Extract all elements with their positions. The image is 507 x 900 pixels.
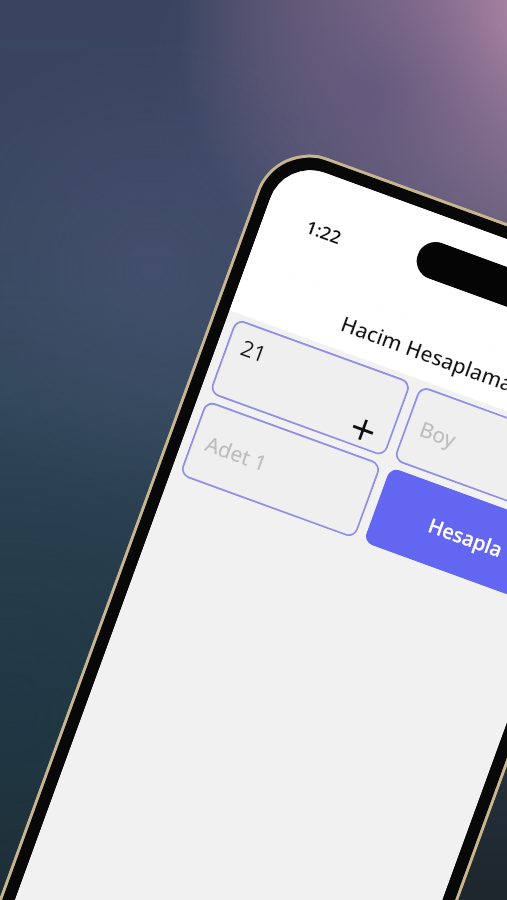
staticText: 1:22 (302, 214, 345, 250)
staticText: Hesapla (425, 511, 506, 563)
staticText: Hacim Hesaplama (337, 309, 507, 399)
staticText: Adet 1 (202, 429, 272, 478)
button[interactable]: Adet 1 (179, 400, 382, 539)
button[interactable]: Hesapla (363, 467, 507, 606)
button[interactable]: Artır (345, 411, 381, 447)
button[interactable]: 21 (209, 318, 412, 457)
staticText: 21 (237, 332, 271, 369)
button[interactable]: Boy (393, 385, 507, 525)
staticText: Boy (415, 415, 460, 455)
